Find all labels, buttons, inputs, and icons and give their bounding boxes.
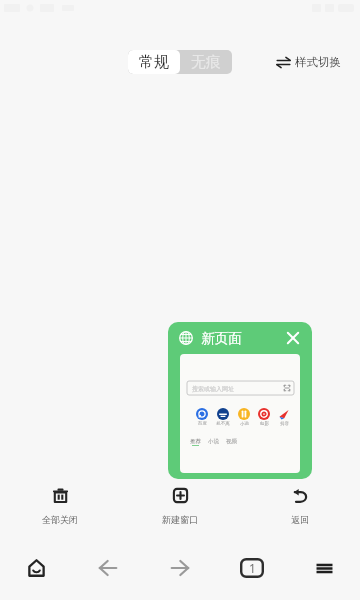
- staticText: 小说: [240, 421, 249, 427]
- button[interactable]: Menu: [288, 545, 360, 591]
- staticText: 推荐: [190, 438, 201, 445]
- button[interactable]: Tabs: 1 open: [216, 545, 288, 591]
- button[interactable]: 新页面: [168, 322, 312, 479]
- staticText: 机不离: [216, 421, 230, 427]
- staticText: 小说: [208, 438, 219, 445]
- staticText: 新建窗口: [162, 514, 198, 525]
- staticText: 视频: [226, 438, 237, 445]
- staticText: 无痕: [191, 53, 221, 72]
- staticText: 样式切换: [295, 55, 341, 69]
- button[interactable]: 样式切换: [276, 51, 341, 73]
- button[interactable]: 返回: [240, 484, 360, 528]
- staticText: 常规: [139, 53, 169, 72]
- staticText: 电影: [260, 421, 269, 427]
- staticText: 抖音: [280, 421, 289, 427]
- staticText: 1: [249, 560, 256, 576]
- staticText: 返回: [291, 514, 309, 525]
- button[interactable]: 全部关闭: [0, 484, 120, 528]
- button[interactable]: Home: [0, 545, 72, 591]
- staticText: 新页面: [201, 330, 242, 347]
- button[interactable]: 常规: [128, 50, 180, 74]
- staticText: 搜索或输入网址: [192, 385, 234, 393]
- button[interactable]: Forward: [144, 545, 216, 591]
- button[interactable]: 无痕: [180, 50, 232, 74]
- staticText: 百度: [198, 421, 207, 427]
- staticText: 全部关闭: [42, 514, 78, 525]
- button[interactable]: Close tab: [286, 331, 300, 345]
- button[interactable]: Back: [72, 545, 144, 591]
- button[interactable]: 新建窗口: [120, 484, 240, 528]
